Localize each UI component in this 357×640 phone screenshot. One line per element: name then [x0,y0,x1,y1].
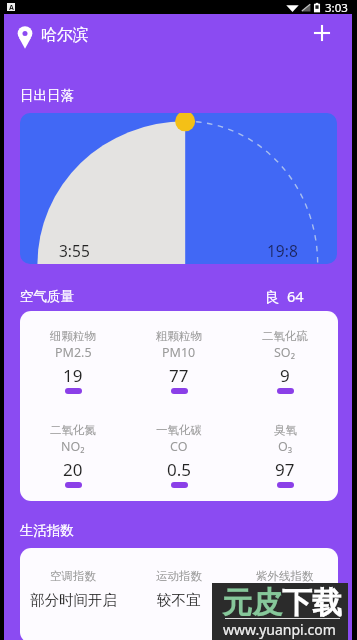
button[interactable]: 细颗粒物 [20,329,126,394]
button[interactable]: 细颗粒物 [20,311,338,501]
staticText: CO [170,438,188,455]
staticText: 19 [63,364,83,387]
staticText: 一氧化碳 [156,423,202,437]
button[interactable]: Add city [306,17,338,49]
staticText: 19:8 [267,240,298,261]
staticText: 良 64 [265,286,304,306]
button[interactable]: 空调指数 [20,548,338,640]
staticText: 日出日落 [20,87,74,104]
staticText: 哈尔滨 [41,25,89,45]
staticText: 3:03 [325,0,348,14]
staticText: 9 [280,364,290,387]
staticText: 97 [275,458,295,481]
staticText: 细颗粒物 [50,329,96,343]
staticText: 元皮 [222,584,282,622]
staticText: 紫外线指数 [256,569,314,583]
staticText: 空调指数 [50,569,96,583]
button[interactable]: 一氧化碳 [126,423,232,488]
staticText: 臭氧 [274,423,297,437]
staticText: 生活指数 [20,522,74,539]
staticText: O₃ [278,438,293,455]
staticText: PM10 [162,344,196,361]
button[interactable]: 二氧化氮 [20,423,126,488]
button[interactable]: 3:55 [20,113,337,264]
button[interactable]: 二氧化硫 [232,329,338,394]
button[interactable]: 臭氧 [232,423,338,488]
staticText: 部分时间开启 [30,591,117,609]
button[interactable]: 空调指数 [20,569,126,609]
button[interactable]: 紫外线指数 [232,569,338,609]
staticText: 运动指数 [156,569,202,583]
staticText: 下载 [282,584,342,622]
button[interactable]: Location [17,27,33,43]
staticText: 3:55 [59,240,90,261]
staticText: 二氧化氮 [50,423,96,437]
staticText: 77 [169,364,189,387]
staticText: 0.5 [167,458,192,481]
staticText: 二氧化硫 [262,329,308,343]
staticText: A [9,3,14,11]
button[interactable]: 粗颗粒物 [126,329,232,394]
staticText: 较不宜 [157,591,201,609]
staticText: PM2.5 [55,344,92,361]
staticText: 20 [63,458,83,481]
staticText: 粗颗粒物 [156,329,202,343]
staticText: NO₂ [61,438,85,455]
staticText: SO₂ [274,344,296,361]
staticText: 弱 [278,591,293,609]
staticText: 空气质量 [20,288,74,305]
button[interactable]: 运动指数 [126,569,232,609]
staticText: www.yuanpi.com [223,620,336,639]
